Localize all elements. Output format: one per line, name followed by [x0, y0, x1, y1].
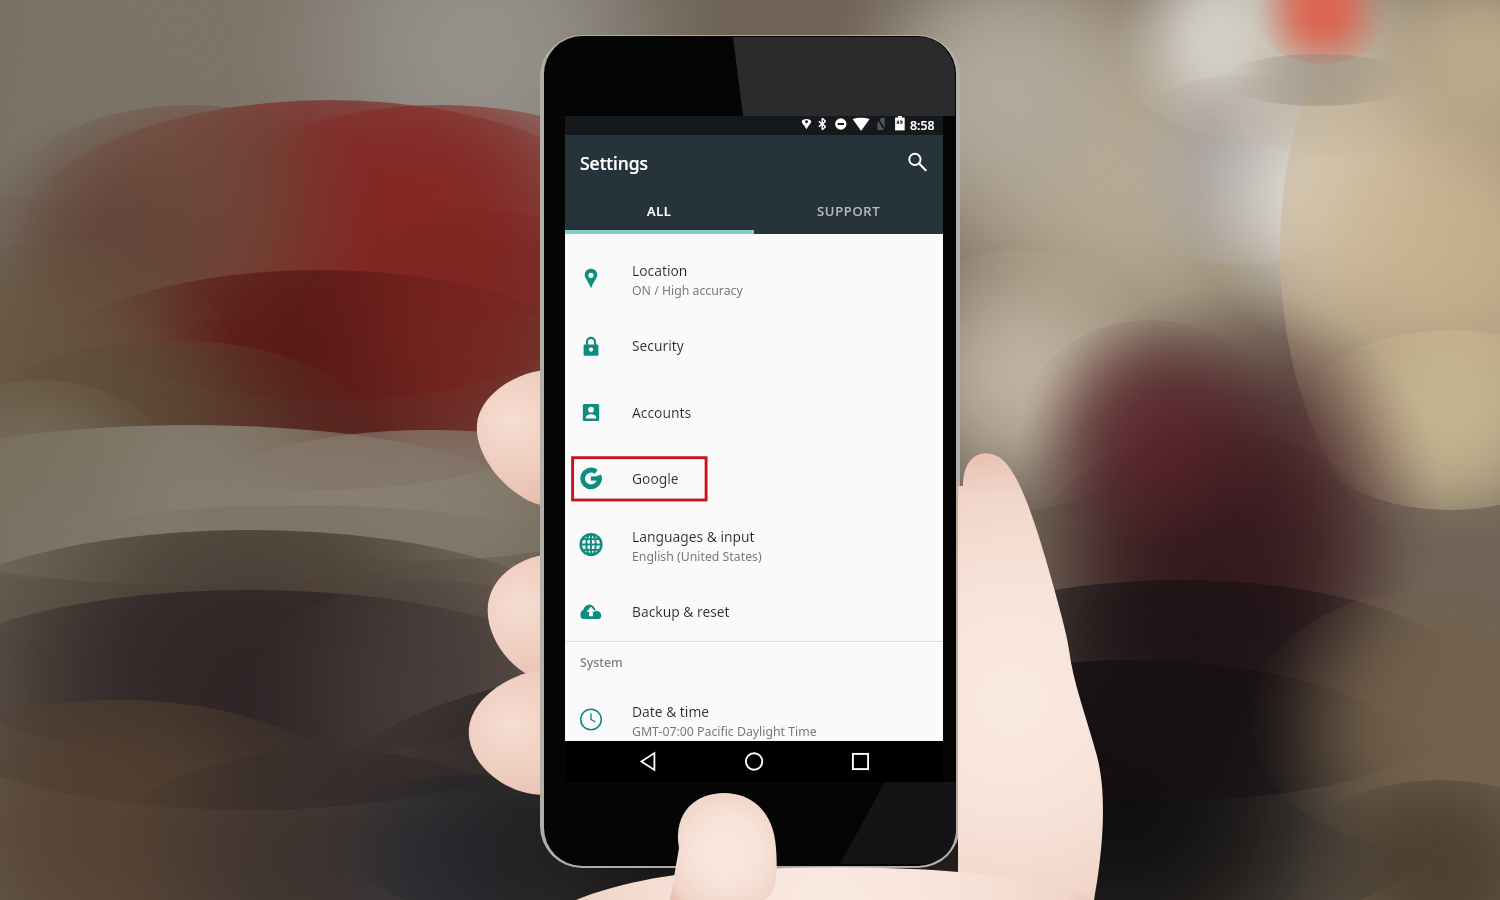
staticText: ON / High accuracy — [632, 282, 743, 299]
staticText: SUPPORT — [817, 202, 881, 220]
staticText: Security — [632, 336, 684, 355]
button[interactable]: Backup & reset — [565, 578, 943, 645]
button[interactable]: Home — [691, 741, 817, 782]
button[interactable]: Accounts — [565, 379, 943, 446]
staticText: System — [580, 654, 623, 671]
staticText: Settings — [580, 151, 649, 175]
button[interactable]: Security — [565, 312, 943, 379]
button[interactable]: Recents — [817, 741, 943, 782]
staticText: Accounts — [632, 403, 692, 422]
staticText: 8:58 — [910, 117, 935, 134]
button[interactable]: Back — [565, 741, 691, 782]
staticText: Date & time — [632, 702, 710, 721]
staticText: Google — [632, 469, 679, 488]
button[interactable]: ALL — [565, 191, 754, 230]
staticText: ALL — [647, 202, 672, 220]
button[interactable]: Languages & input — [565, 511, 943, 578]
button[interactable]: Location — [565, 245, 943, 312]
button[interactable]: SUPPORT — [754, 191, 943, 230]
staticText: Location — [632, 261, 688, 280]
staticText: GMT-07:00 Pacific Daylight Time — [632, 723, 817, 740]
staticText: English (United States) — [632, 548, 762, 565]
button[interactable]: Date & time — [565, 686, 943, 753]
staticText: Backup & reset — [632, 602, 730, 621]
staticText: Languages & input — [632, 527, 755, 546]
button[interactable]: Search — [900, 145, 934, 179]
button[interactable]: Google — [565, 445, 943, 512]
